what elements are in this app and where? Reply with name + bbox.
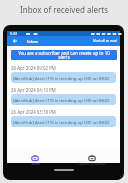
- staticText: Mark all as read: [93, 39, 117, 43]
- staticText: 5:33: [10, 31, 18, 36]
- staticText: [AlertHub] Arxiv (19) is trending up (30…: [13, 97, 110, 103]
- staticText: Inbox: [31, 162, 40, 166]
- staticText: 26 Apr 2024 09:02 PM: [11, 65, 56, 71]
- button[interactable]: 26 Apr 2024 03:18 PM: [7, 109, 120, 131]
- staticText: Inbox: [27, 39, 38, 44]
- staticText: You are a subscriber and can create up t…: [13, 50, 115, 60]
- button[interactable]: 26 Apr 2024 04:10 PM: [7, 87, 120, 109]
- staticText: Inbox of received alerts: [20, 4, 108, 15]
- staticText: Upcoming calendar: [78, 162, 106, 166]
- button[interactable]: Mark all as read: [90, 37, 120, 45]
- button[interactable]: Upcoming calendar: [63, 147, 120, 163]
- staticText: 26 Apr 2024 04:10 PM: [11, 87, 56, 93]
- button[interactable]: Back: [10, 36, 20, 46]
- button[interactable]: Inbox: [7, 147, 63, 163]
- staticText: 26 Apr 2024 03:18 PM: [11, 109, 56, 115]
- staticText: [AlertHub] Arxiv (19) is trending up (30…: [13, 75, 110, 81]
- button[interactable]: You are a subscriber and can create up t…: [11, 50, 117, 60]
- button[interactable]: 26 Apr 2024 09:02 PM: [7, 65, 120, 87]
- staticText: [AlertHub] Arxiv (19) is trending up (30…: [13, 119, 110, 125]
